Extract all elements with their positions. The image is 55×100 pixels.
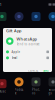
button[interactable]: Photos (31, 77, 40, 95)
staticText: Gift App (6, 28, 21, 33)
button[interactable]: App (48, 12, 55, 21)
button[interactable]: SEND (43, 69, 49, 72)
staticText: Music (0, 90, 5, 93)
button[interactable]: CANCEL (28, 69, 38, 72)
staticText: Email (11, 56, 17, 60)
button[interactable]: Settings (48, 77, 55, 95)
staticText: Photos (32, 88, 40, 95)
staticText: SEND (43, 69, 49, 72)
button[interactable]: Music (0, 79, 6, 93)
staticText: Settings (48, 88, 55, 95)
button[interactable]: App (14, 12, 23, 21)
button[interactable]: Apple (3, 49, 52, 55)
button[interactable]: Podcast (14, 77, 23, 95)
button[interactable]: App (31, 12, 40, 21)
staticText: Send to a contact (16, 42, 39, 46)
staticText: 9:41 (0, 2, 1, 7)
staticText: Podcast (14, 88, 23, 95)
staticText: WhatsApp (16, 36, 36, 42)
staticText: CANCEL (28, 69, 38, 72)
staticText: Apple (11, 50, 20, 54)
button[interactable]: App (0, 12, 6, 21)
button[interactable]: Email (3, 55, 52, 61)
